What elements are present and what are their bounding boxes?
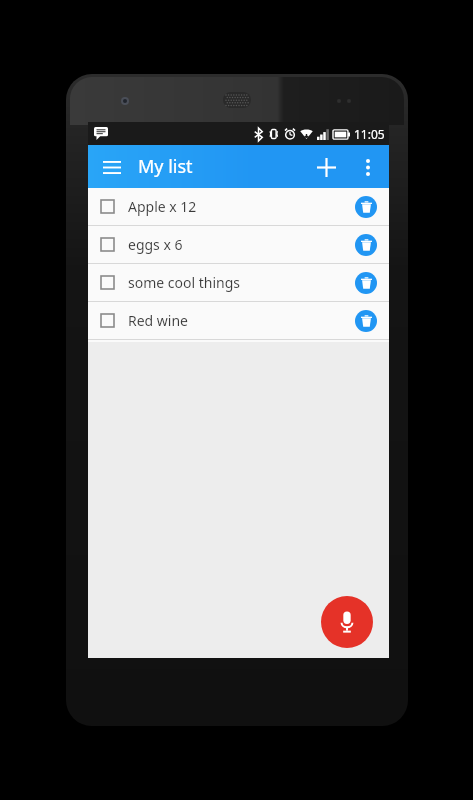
button[interactable]: Delete eggs x 6 bbox=[348, 227, 384, 263]
button[interactable]: Open navigation drawer bbox=[94, 149, 130, 185]
button[interactable]: Voice input bbox=[321, 596, 373, 648]
staticText: My list bbox=[138, 154, 193, 179]
button[interactable]: eggs x 6 bbox=[88, 226, 389, 263]
button[interactable]: Delete Red wine bbox=[348, 303, 384, 339]
staticText: Red wine bbox=[128, 311, 189, 330]
staticText: Apple x 12 bbox=[128, 197, 197, 216]
button[interactable]: Add item bbox=[307, 148, 345, 186]
button[interactable]: Red wine bbox=[88, 302, 389, 339]
button[interactable]: Delete some cool things bbox=[348, 265, 384, 301]
button[interactable]: Delete Apple x 12 bbox=[348, 189, 384, 225]
button[interactable]: More options bbox=[351, 150, 385, 184]
staticText: 11:05 bbox=[354, 126, 385, 142]
button[interactable]: Apple x 12 bbox=[88, 188, 389, 225]
button[interactable]: some cool things bbox=[88, 264, 389, 301]
staticText: eggs x 6 bbox=[128, 235, 183, 254]
staticText: some cool things bbox=[128, 273, 240, 292]
